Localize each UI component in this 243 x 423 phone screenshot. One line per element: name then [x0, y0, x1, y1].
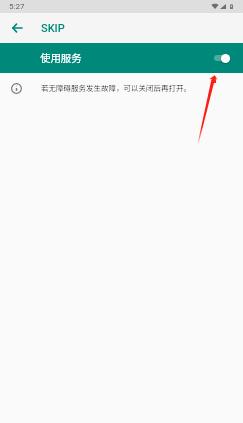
staticText: 若无障碍服务发生故障，可以关闭后再打开。 — [41, 82, 191, 93]
button[interactable]: Toggle service — [213, 51, 232, 65]
button[interactable]: Back — [5, 16, 29, 40]
staticText: 5:27 — [9, 2, 25, 11]
button[interactable]: 使用服务 — [0, 43, 243, 73]
button[interactable]: SKIP — [29, 18, 71, 39]
staticText: 使用服务 — [40, 50, 82, 65]
